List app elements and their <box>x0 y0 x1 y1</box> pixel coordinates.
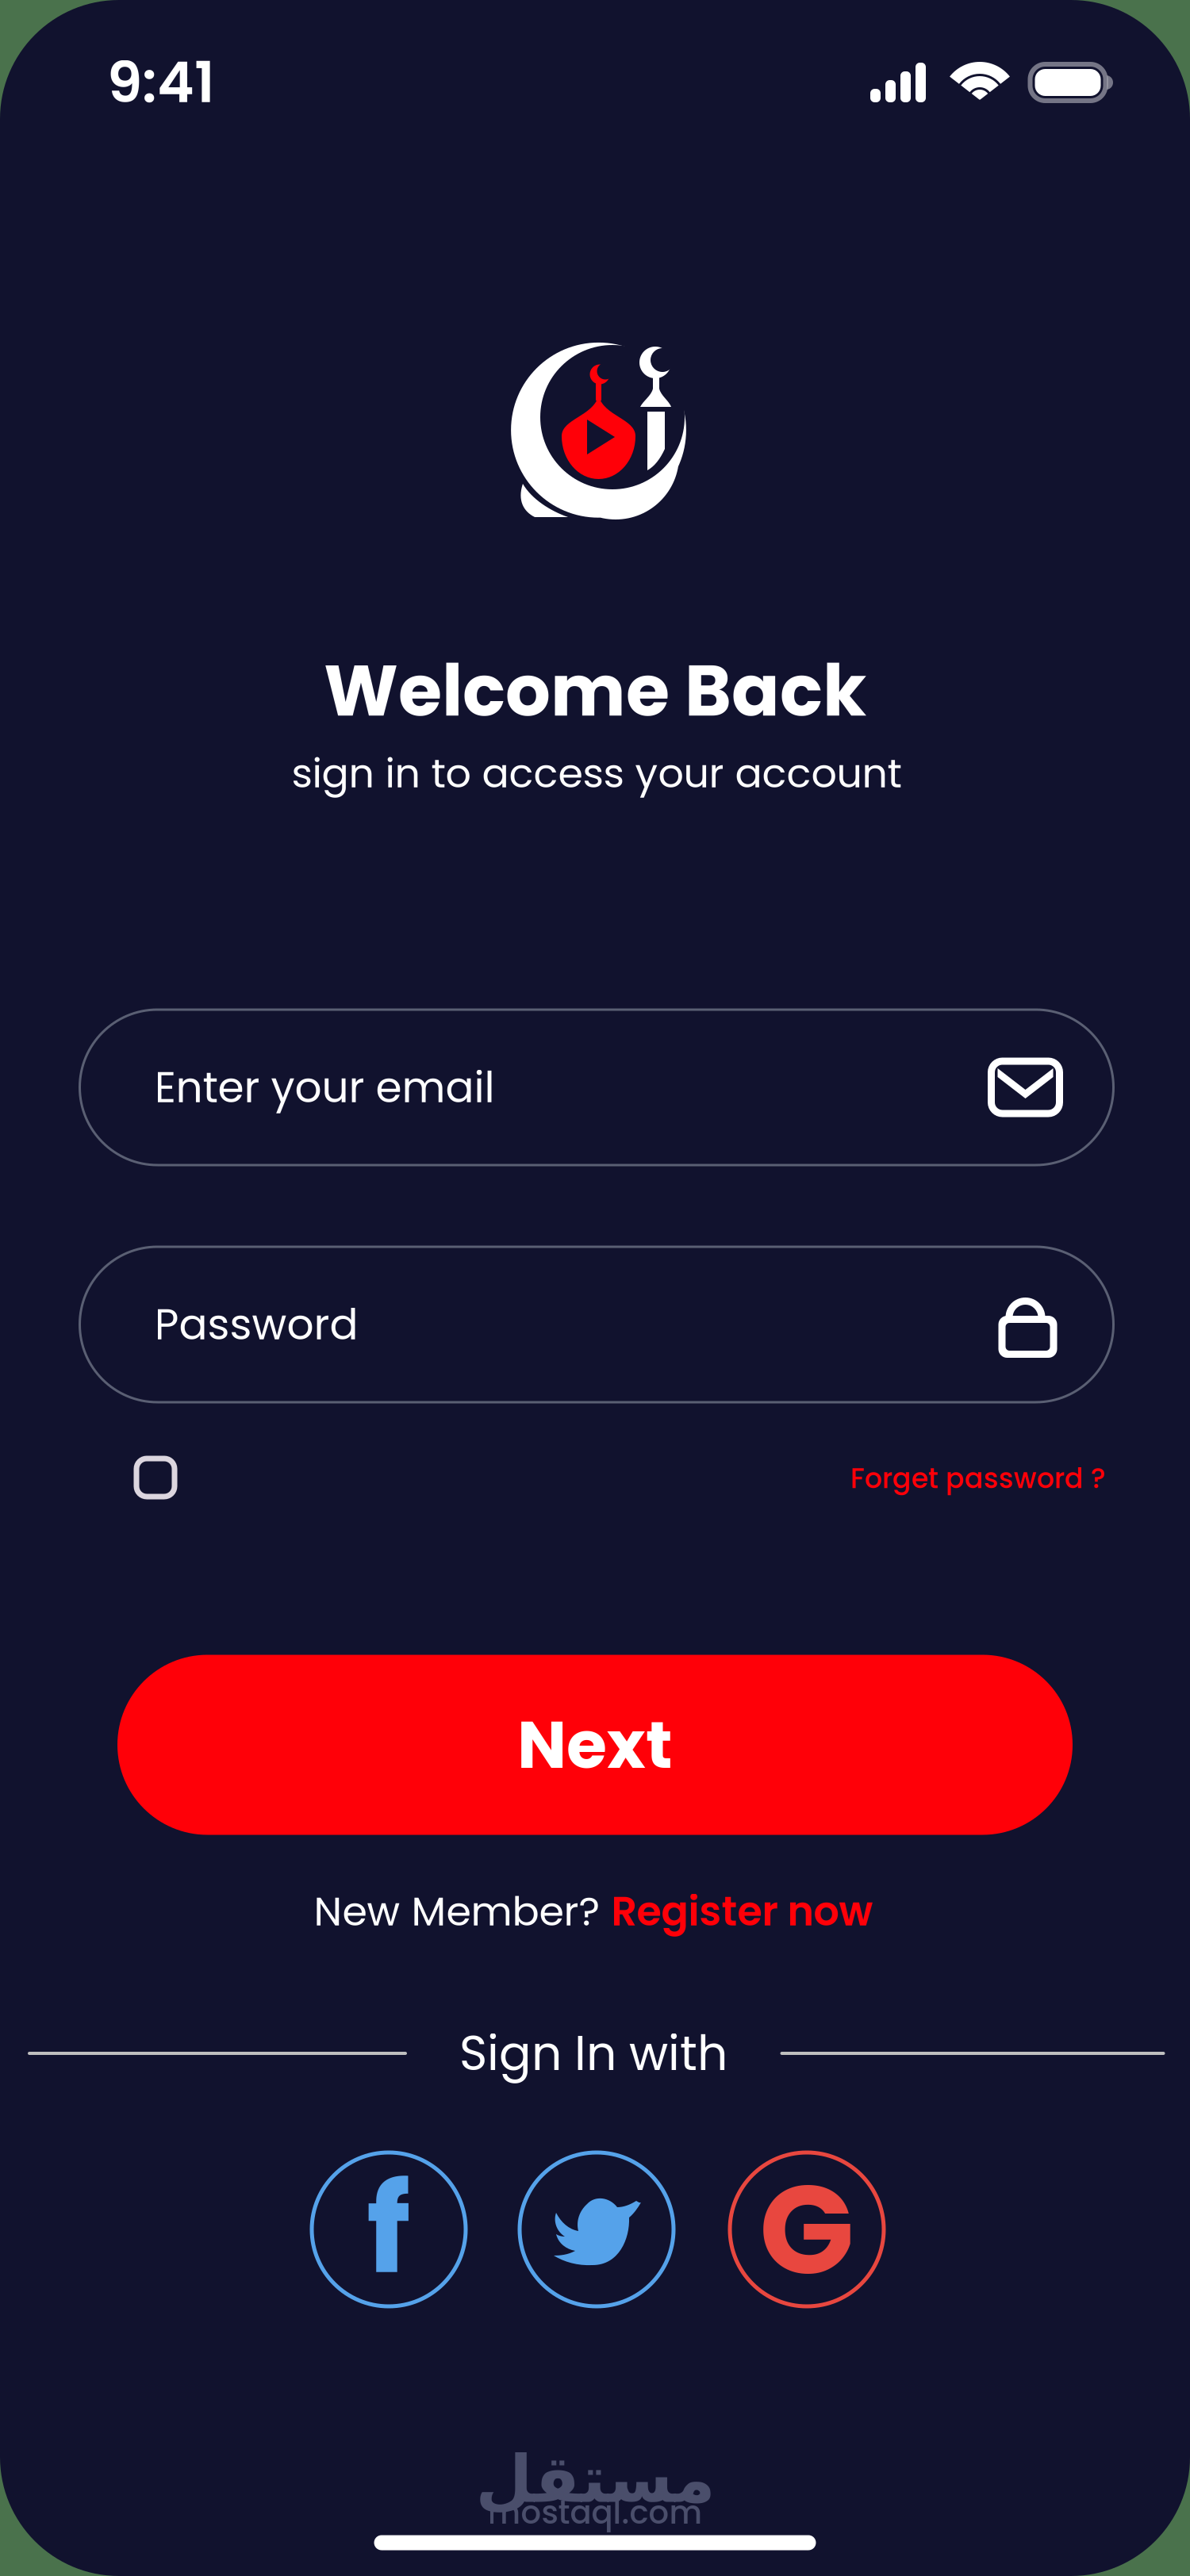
button[interactable]: Remember me <box>136 1459 175 1497</box>
staticText: Sign In with <box>459 2020 727 2087</box>
button[interactable]: Next <box>117 1655 1073 1835</box>
staticText: Register now <box>611 1883 873 1939</box>
button[interactable]: Password <box>80 1247 1113 1402</box>
staticText: Next <box>517 1699 673 1791</box>
button[interactable]: Sign in with Twitter <box>520 2152 674 2306</box>
staticText: G <box>759 2142 854 2317</box>
button[interactable]: Register now <box>611 1883 873 1939</box>
staticText: Enter your email <box>154 1058 495 1117</box>
staticText: Password <box>154 1295 358 1354</box>
staticText: mostaql.com <box>488 2490 702 2535</box>
staticText: Forget password ? <box>850 1459 1106 1498</box>
staticText: مستقل <box>475 2441 715 2517</box>
button[interactable]: Sign in with Facebook <box>312 2152 466 2306</box>
button[interactable]: Sign in with Google <box>730 2152 884 2306</box>
staticText: f <box>367 2144 411 2315</box>
staticText: sign in to access your account <box>292 745 902 801</box>
staticText: 9:41 <box>107 43 215 122</box>
button[interactable]: Enter your email <box>80 1010 1113 1165</box>
button[interactable]: Forget password ? <box>850 1459 1106 1498</box>
staticText: New Member? <box>314 1883 611 1939</box>
staticText: Welcome Back <box>324 641 866 740</box>
